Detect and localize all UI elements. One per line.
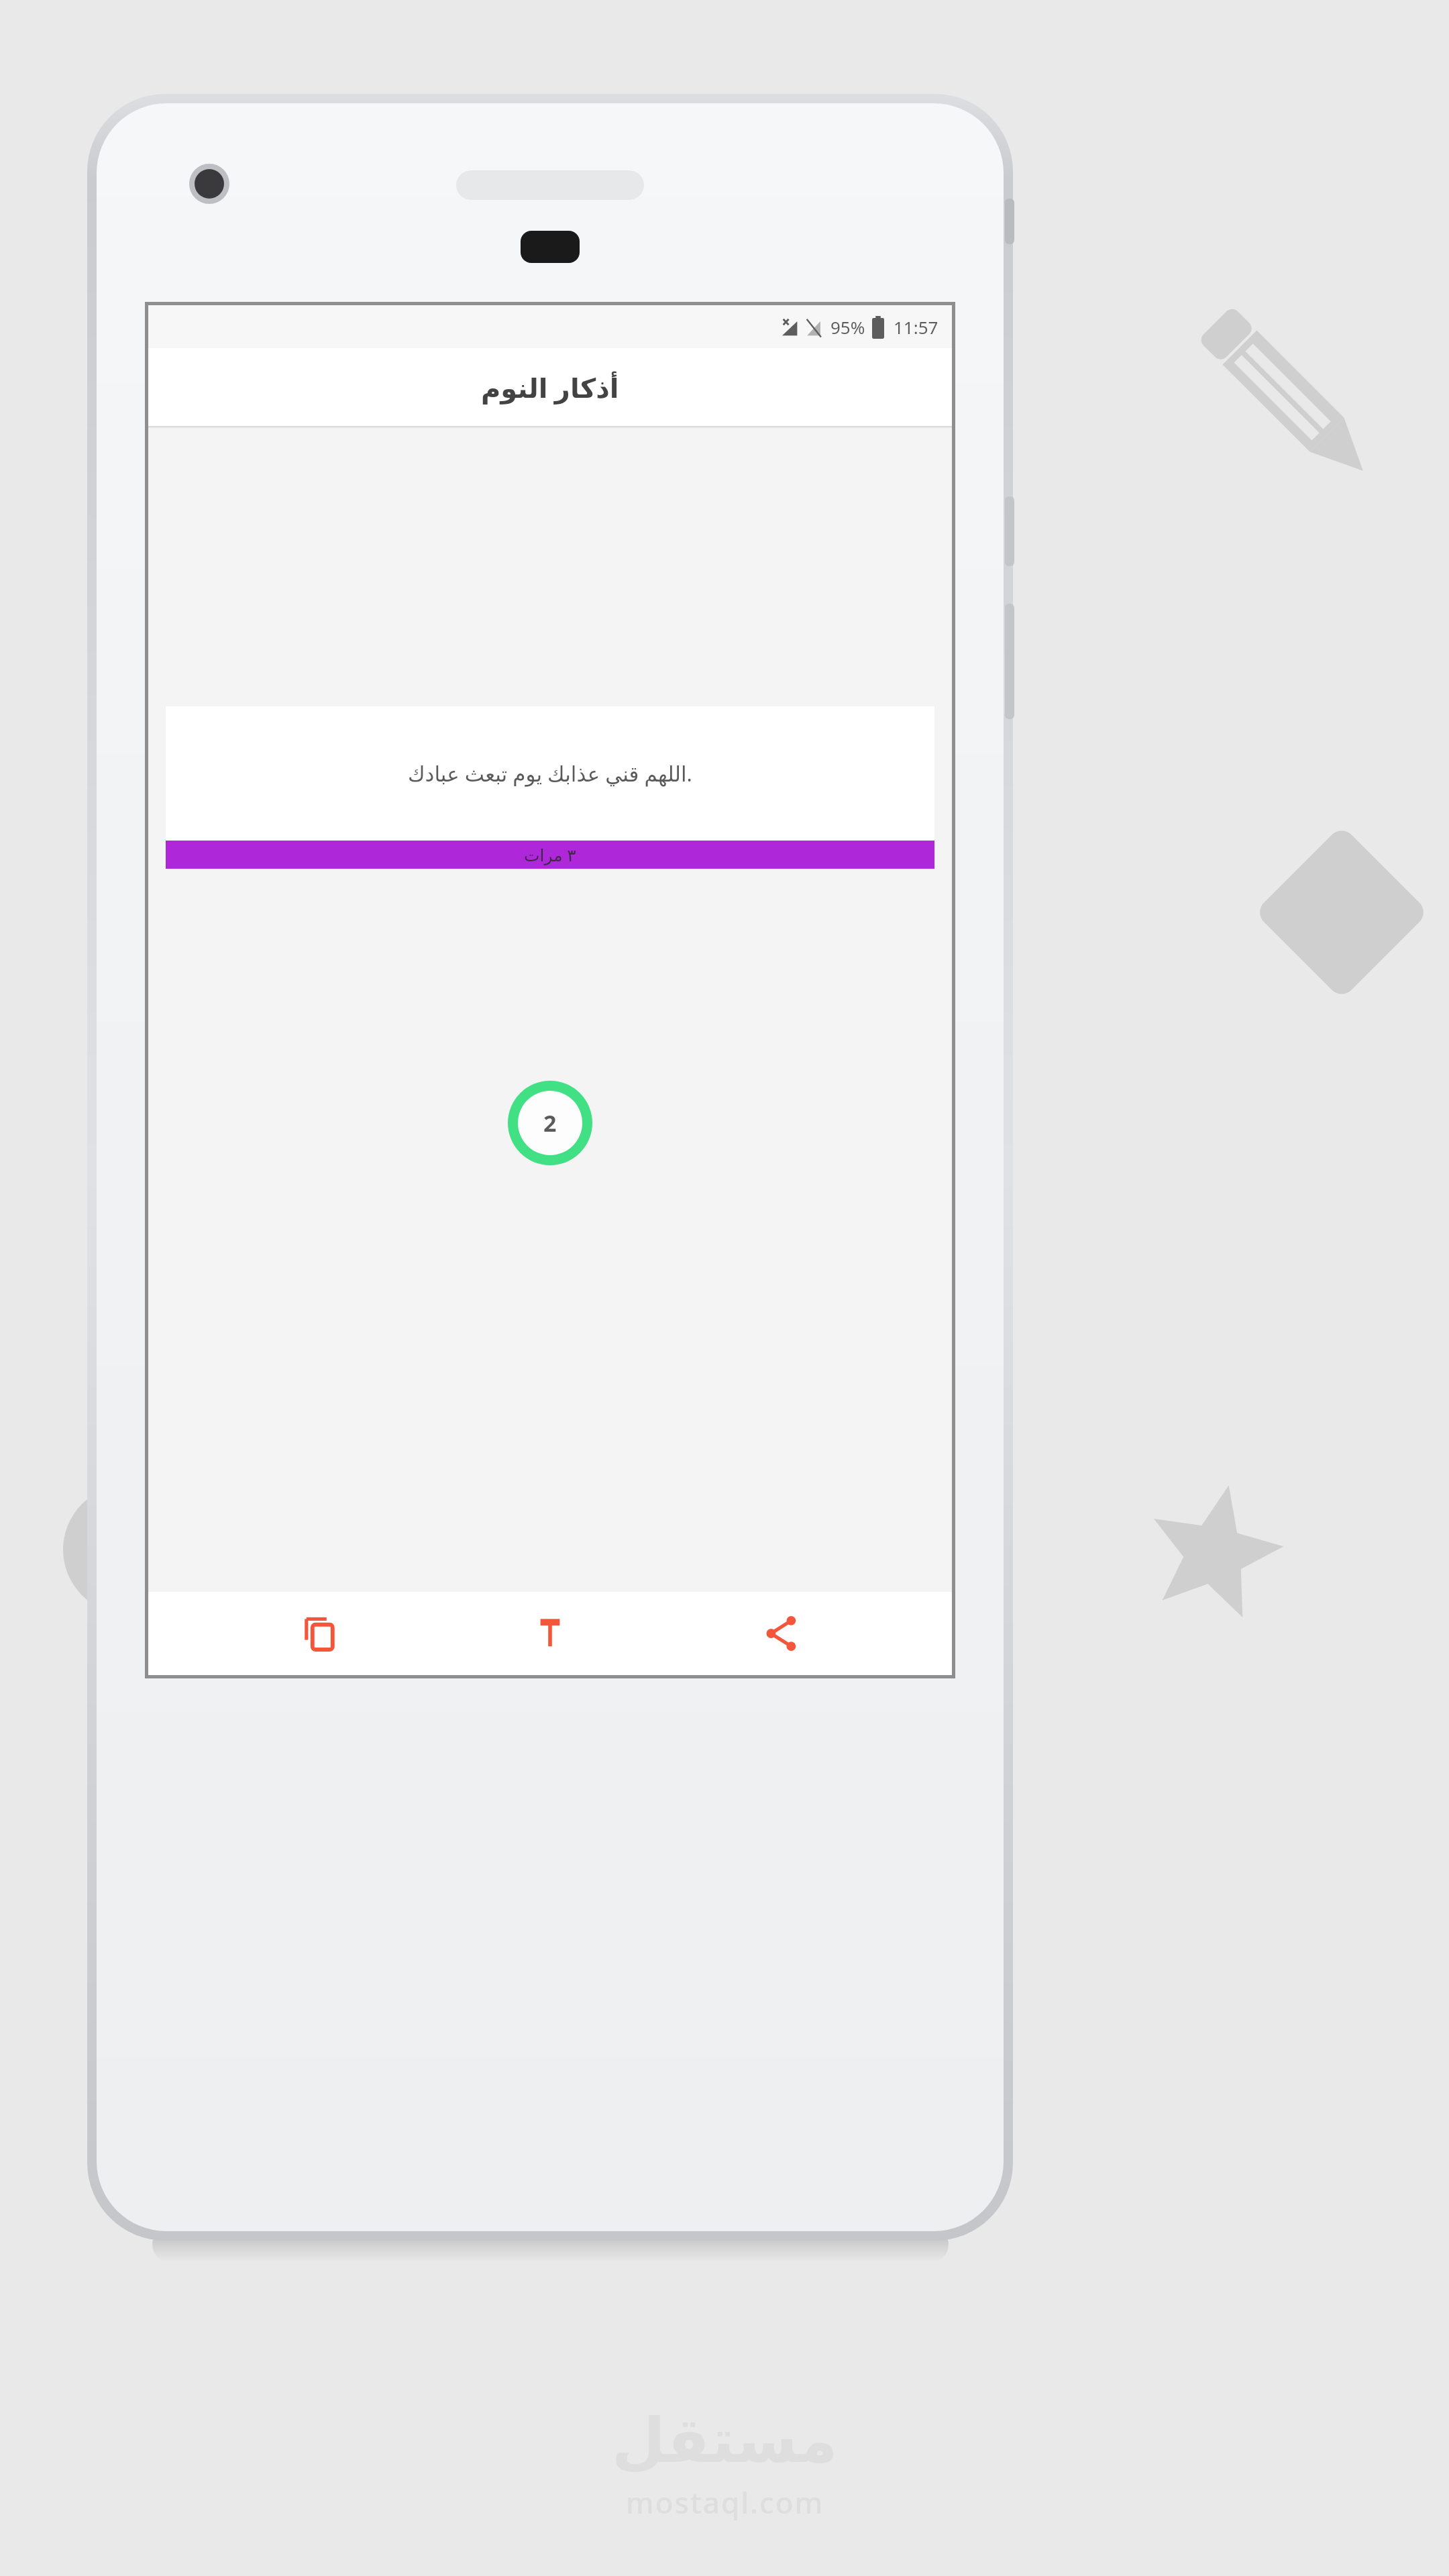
button[interactable]: اللهم قني عذابك يوم تبعث عبادك. bbox=[166, 706, 934, 869]
staticText: أذكار النوم bbox=[481, 369, 619, 405]
button[interactable]: Counter bbox=[508, 1081, 592, 1165]
button[interactable]: Share bbox=[721, 1592, 842, 1675]
button[interactable]: Copy bbox=[259, 1592, 380, 1675]
staticText: ٣ مرات bbox=[524, 843, 576, 866]
staticText: 2 bbox=[543, 1108, 557, 1138]
staticText: 11:57 bbox=[894, 315, 938, 339]
staticText: مستقل bbox=[612, 2405, 838, 2477]
button[interactable]: Text size bbox=[490, 1592, 610, 1675]
staticText: اللهم قني عذابك يوم تبعث عبادك. bbox=[408, 759, 692, 788]
staticText: 95% bbox=[830, 315, 865, 339]
button[interactable]: ٣ مرات bbox=[166, 841, 934, 869]
staticText: mostaql.com bbox=[626, 2482, 824, 2522]
